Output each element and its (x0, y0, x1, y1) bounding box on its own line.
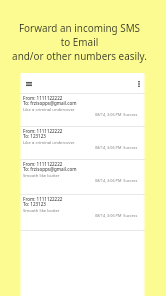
button[interactable]: From: 1111122222 (19, 195, 146, 230)
staticText: Like a criminal undercover (23, 140, 75, 146)
button[interactable]: Menu (22, 77, 35, 90)
button[interactable]: More options (133, 78, 145, 90)
button[interactable]: From: 1111122222 (19, 127, 146, 159)
staticText: 08/14, 3:06 PM Success (95, 112, 138, 117)
staticText: 08/14, 3:06 PM Success (95, 213, 138, 218)
staticText: From: 1111122222 (23, 95, 63, 101)
staticText: To: frzisopps@gmail.com (23, 166, 77, 172)
staticText: Smooth like butter (23, 208, 60, 214)
button[interactable]: From: 1111122222 (19, 94, 146, 126)
staticText: To: frzisopps@gmail.com (23, 100, 77, 106)
staticText: To: 123123 (23, 133, 46, 139)
staticText: 08/14, 3:06 PM Success (95, 145, 138, 150)
staticText: Forward an incoming SMS to Email and/or … (12, 21, 147, 63)
staticText: From: 1111122222 (23, 196, 63, 202)
staticText: From: 1111122222 (23, 161, 63, 167)
staticText: From: 1111122222 (23, 128, 63, 134)
staticText: Like a criminal undercover (23, 107, 75, 113)
staticText: 08/14, 3:06 PM Success (95, 178, 138, 183)
button[interactable]: From: 1111122222 (19, 160, 146, 194)
staticText: Smooth like butter (23, 173, 60, 179)
staticText: To: 123123 (23, 201, 46, 207)
